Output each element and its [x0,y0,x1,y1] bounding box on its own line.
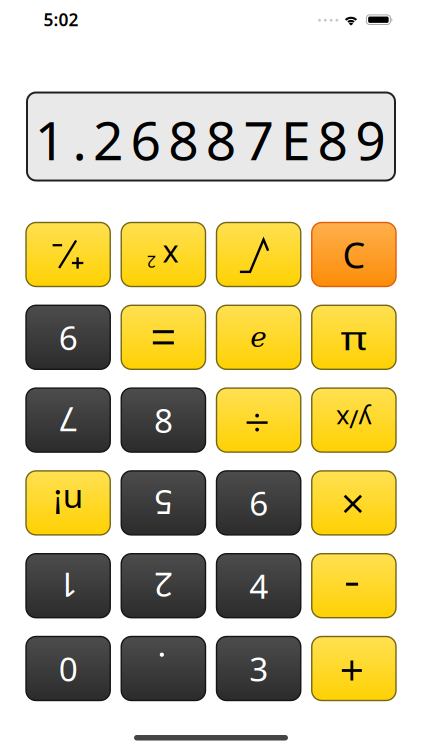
staticText: 7 [59,398,78,442]
button[interactable]: Decimal point [121,636,205,700]
staticText: π [343,315,365,359]
staticText: 4 [249,564,268,608]
button[interactable]: n! [26,471,110,535]
staticText: 6 [59,315,78,359]
button[interactable]: 7 [26,388,110,452]
staticText: 2 [147,251,156,273]
button[interactable]: 4 [216,554,301,618]
staticText: e [250,321,267,354]
button[interactable]: Add [312,636,396,700]
staticText: 0 [59,646,78,691]
button[interactable]: Equals [121,305,205,369]
staticText: C [342,231,365,278]
button[interactable]: Integral [216,222,301,286]
button[interactable]: 8 [121,388,205,452]
button[interactable]: y/x [312,388,396,452]
staticText: 1 [59,564,78,608]
staticText: y/x [336,403,371,437]
button[interactable]: 3 [216,636,301,700]
staticText: n! [53,481,83,525]
staticText: 1.26887E89 [35,104,386,175]
button[interactable]: 0 [26,636,110,700]
button[interactable]: Toggle sign [26,222,110,286]
button[interactable]: C [312,222,396,286]
button[interactable]: x [121,222,205,286]
button[interactable]: Multiply [312,471,396,535]
staticText: x [162,230,178,271]
staticText: 8 [154,398,173,442]
button[interactable]: e [216,305,301,369]
button[interactable]: 6 [216,471,301,535]
staticText: 3 [249,646,268,691]
staticText: 5:02 [43,8,78,31]
button[interactable]: 6 [26,305,110,369]
button[interactable]: Divide [216,388,301,452]
staticText: 6 [249,481,268,525]
staticText: 5 [154,481,173,525]
staticText: 2 [154,564,173,608]
button[interactable]: 2 [121,554,205,618]
button[interactable]: 1 [26,554,110,618]
button[interactable]: π [312,305,396,369]
button[interactable]: Subtract [312,554,396,618]
button[interactable]: 5 [121,471,205,535]
